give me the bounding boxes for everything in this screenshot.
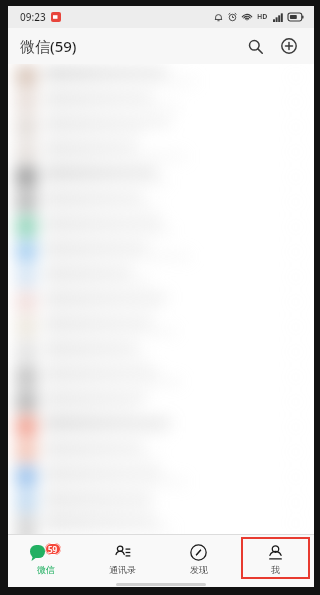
button[interactable] bbox=[8, 489, 314, 514]
button[interactable] bbox=[8, 189, 314, 214]
staticText: 发现 bbox=[190, 564, 208, 575]
button[interactable] bbox=[8, 64, 314, 89]
button[interactable] bbox=[8, 389, 314, 414]
staticText: 我 bbox=[271, 564, 280, 575]
button[interactable]: Add bbox=[274, 31, 304, 61]
button[interactable] bbox=[8, 114, 314, 139]
button[interactable]: Search bbox=[240, 31, 270, 61]
button[interactable] bbox=[8, 264, 314, 289]
button[interactable] bbox=[8, 164, 314, 189]
button[interactable] bbox=[8, 439, 314, 464]
button[interactable] bbox=[8, 214, 314, 239]
button[interactable] bbox=[8, 364, 314, 389]
staticText: HD bbox=[257, 12, 268, 22]
staticText: 微信 bbox=[37, 564, 55, 575]
button[interactable] bbox=[8, 339, 314, 364]
staticText: 59 bbox=[48, 544, 58, 555]
button[interactable] bbox=[8, 464, 314, 489]
button[interactable] bbox=[8, 289, 314, 314]
staticText: 微信(59) bbox=[20, 36, 77, 56]
button[interactable] bbox=[8, 514, 314, 534]
staticText: 09:23 bbox=[20, 10, 46, 24]
button[interactable] bbox=[8, 414, 314, 439]
button[interactable]: 我 bbox=[237, 535, 314, 581]
button[interactable] bbox=[8, 139, 314, 164]
button[interactable] bbox=[8, 314, 314, 339]
button[interactable] bbox=[8, 89, 314, 114]
staticText: 通讯录 bbox=[109, 564, 136, 575]
button[interactable]: 59 bbox=[8, 535, 84, 581]
button[interactable]: 发现 bbox=[160, 535, 237, 581]
button[interactable] bbox=[8, 239, 314, 264]
button[interactable]: 通讯录 bbox=[84, 535, 160, 581]
